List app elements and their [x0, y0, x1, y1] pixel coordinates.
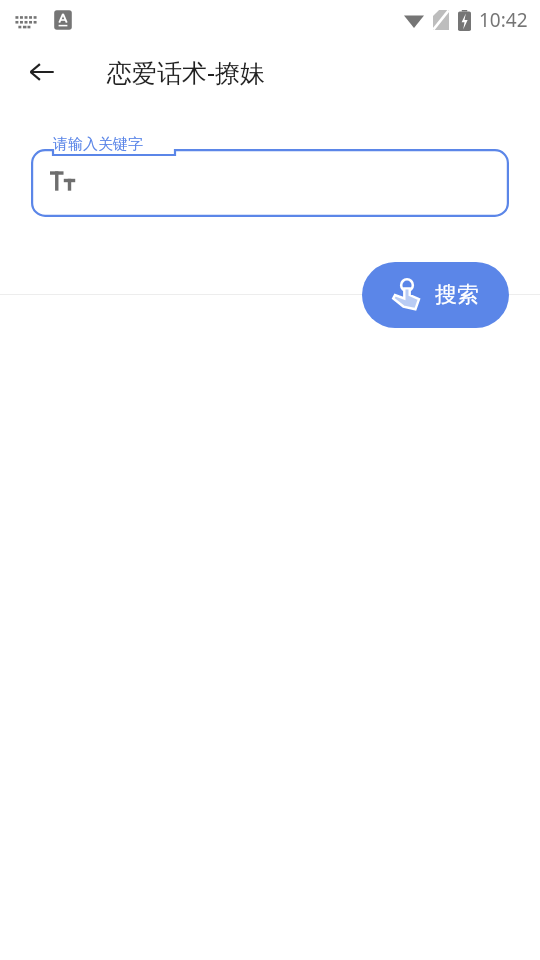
- button[interactable]: 搜索: [362, 262, 509, 328]
- button[interactable]: Back: [18, 48, 66, 96]
- staticText: 请输入关键字: [53, 135, 143, 154]
- staticText: 10:42: [479, 7, 528, 33]
- staticText: 搜索: [435, 281, 479, 309]
- button[interactable]: [31, 149, 509, 217]
- staticText: 恋爱话术-撩妹: [107, 55, 266, 89]
